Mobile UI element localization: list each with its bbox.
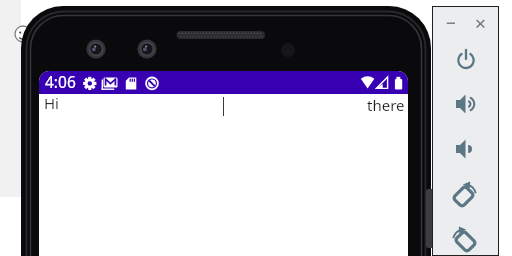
staticText: 4:06	[45, 71, 76, 92]
button[interactable]	[448, 42, 484, 78]
button[interactable]	[447, 86, 483, 122]
button[interactable]	[442, 14, 460, 32]
staticText: Hi	[44, 93, 59, 113]
button[interactable]	[447, 222, 483, 256]
button[interactable]	[447, 131, 483, 167]
staticText: there	[367, 95, 405, 115]
button[interactable]	[447, 177, 483, 213]
button[interactable]	[471, 14, 489, 32]
